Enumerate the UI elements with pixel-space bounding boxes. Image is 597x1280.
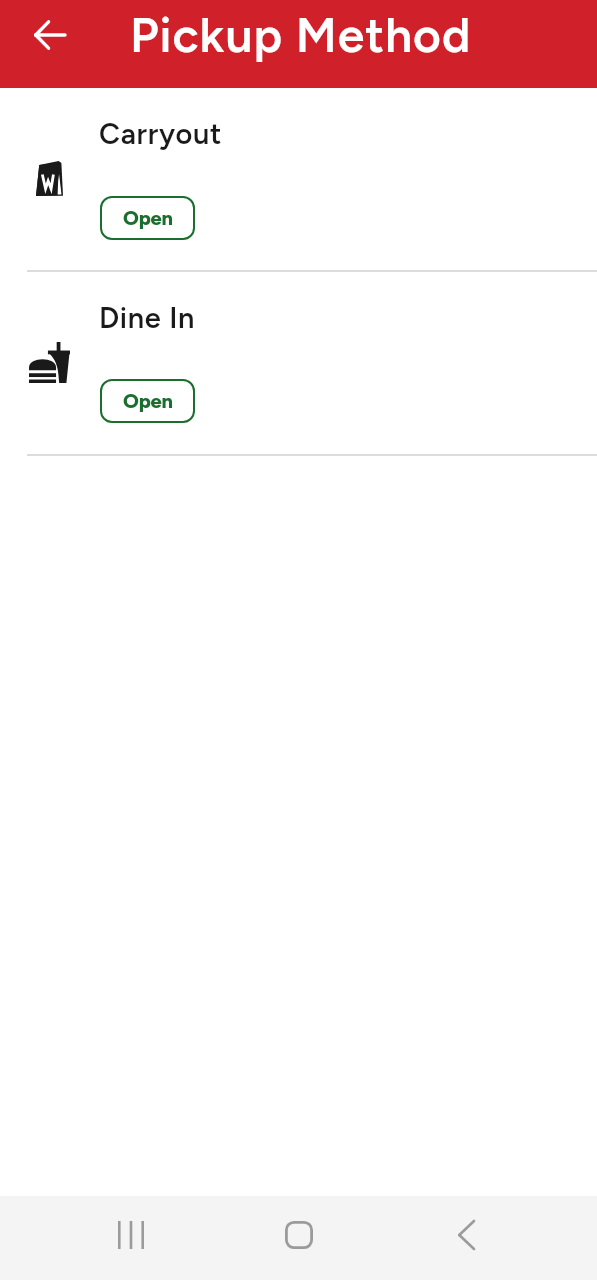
button[interactable]: Home xyxy=(269,1205,329,1265)
staticText: Dine In xyxy=(99,300,196,335)
button[interactable]: Back xyxy=(436,1205,496,1265)
staticText: Open xyxy=(123,206,173,230)
button[interactable]: Back xyxy=(25,10,74,59)
staticText: Pickup Method xyxy=(130,6,472,64)
button[interactable]: Carryout xyxy=(0,88,597,270)
button[interactable]: Open xyxy=(100,379,195,423)
button[interactable]: Recent apps xyxy=(101,1205,161,1265)
button[interactable]: Dine In xyxy=(0,272,597,454)
staticText: Open xyxy=(123,389,173,413)
button[interactable]: Open xyxy=(100,196,195,240)
staticText: Carryout xyxy=(99,116,223,151)
